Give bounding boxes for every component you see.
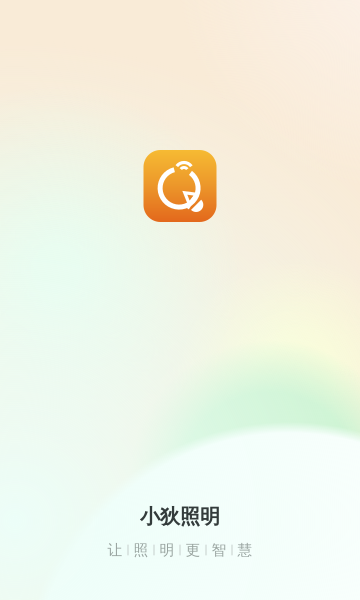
staticText: 明	[159, 541, 174, 559]
staticText: 慧	[237, 541, 252, 559]
staticText: 照	[133, 541, 148, 559]
staticText: 让	[107, 541, 122, 559]
staticText: 小狄照明	[140, 504, 220, 529]
staticText: 智	[211, 541, 226, 559]
staticText: 更	[185, 541, 200, 559]
